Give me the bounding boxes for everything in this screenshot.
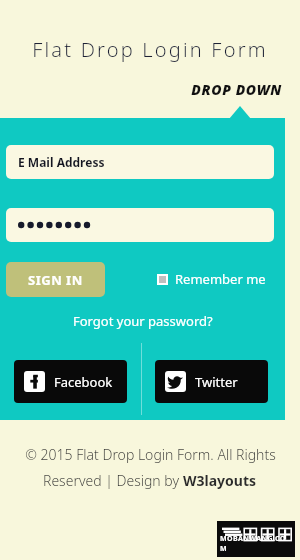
- staticText: Reserved | Design by: [43, 471, 183, 490]
- staticText: E Mail Address: [18, 154, 105, 170]
- staticText: Flat Drop Login Form: [0, 36, 300, 63]
- button[interactable]: Twitter: [155, 360, 268, 403]
- staticText: Remember me: [175, 270, 266, 288]
- staticText: © 2015 Flat Drop Login Form. All Rights: [25, 445, 276, 464]
- button[interactable]: Forgot your password?: [0, 312, 285, 330]
- button[interactable]: W3layouts: [183, 471, 257, 490]
- button[interactable]: [6, 208, 274, 242]
- button[interactable]: E Mail Address: [6, 145, 274, 179]
- staticText: DROP DOWN: [0, 80, 282, 99]
- button[interactable]: Remember me: [157, 270, 266, 288]
- staticText: MOBANWANG.COM: [220, 534, 292, 554]
- staticText: Twitter: [195, 373, 238, 391]
- staticText: SIGN IN: [28, 271, 83, 289]
- staticText: Forgot your password?: [73, 312, 213, 330]
- button[interactable]: Facebook: [14, 360, 127, 403]
- staticText: Facebook: [54, 373, 113, 391]
- button[interactable]: SIGN IN: [6, 262, 105, 297]
